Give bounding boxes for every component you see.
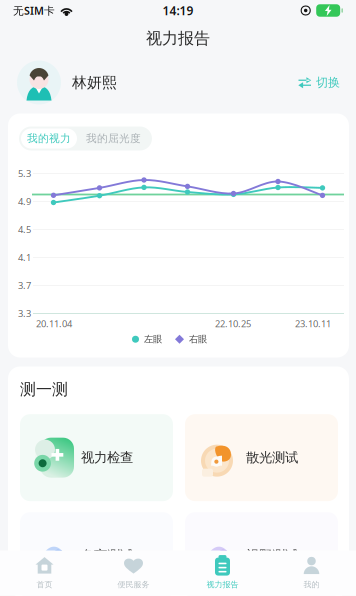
staticText: 切换 xyxy=(316,75,340,90)
staticText: 14:19 xyxy=(162,2,193,18)
staticText: 视野测试 xyxy=(246,547,298,564)
staticText: 色盲测试 xyxy=(81,547,133,564)
button[interactable]: 我的 xyxy=(267,548,356,596)
staticText: 3.7 xyxy=(18,279,31,292)
staticText: 视力检查 xyxy=(81,449,133,466)
staticText: 4.9 xyxy=(18,195,31,208)
button[interactable]: 视力报告 xyxy=(178,548,267,596)
staticText: 视力报告 xyxy=(206,580,238,589)
staticText: 3.3 xyxy=(18,307,31,320)
button[interactable]: 我的屈光度 xyxy=(77,128,150,148)
staticText: 我的视力 xyxy=(27,132,71,145)
staticText: 20.11.04 xyxy=(36,317,72,330)
staticText: 4.1 xyxy=(18,251,31,264)
button[interactable]: 首页 xyxy=(0,548,89,596)
staticText: 左眼 xyxy=(144,333,162,345)
staticText: 无SIM卡 xyxy=(13,3,55,18)
staticText: 5.3 xyxy=(18,167,31,180)
button[interactable]: 视野测试 xyxy=(185,512,338,596)
staticText: 散光测试 xyxy=(246,449,298,466)
button[interactable]: 色盲测试 xyxy=(20,512,173,596)
staticText: 便民服务 xyxy=(117,580,149,589)
staticText: 23.10.11 xyxy=(295,317,331,330)
staticText: 我的 xyxy=(303,580,319,589)
button[interactable]: 切换 xyxy=(286,67,340,98)
staticText: 林妍熙 xyxy=(72,73,117,91)
button[interactable]: 我的视力 xyxy=(21,128,77,148)
staticText: 我的屈光度 xyxy=(86,132,141,145)
staticText: 4.5 xyxy=(18,223,31,236)
staticText: 首页 xyxy=(36,580,52,589)
button[interactable]: 便民服务 xyxy=(89,548,178,596)
staticText: 22.10.25 xyxy=(215,317,251,330)
button[interactable]: 散光测试 xyxy=(185,414,338,501)
staticText: 右眼 xyxy=(189,333,207,345)
staticText: 测一测 xyxy=(20,379,68,399)
staticText: 视力报告 xyxy=(146,29,210,48)
button[interactable]: 视力检查 xyxy=(20,414,173,501)
